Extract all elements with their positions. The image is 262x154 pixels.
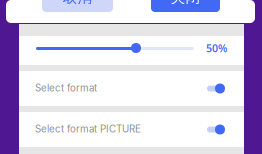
staticText: Select format PICTURE <box>35 123 141 135</box>
staticText: Select format <box>35 82 97 94</box>
button[interactable]: 关闭 <box>151 0 220 12</box>
button[interactable]: 取消 <box>42 0 113 12</box>
staticText: 取消 <box>62 0 92 6</box>
staticText: 50% <box>206 41 227 55</box>
staticText: 关闭 <box>170 0 200 6</box>
button[interactable]: Select format <box>19 71 244 106</box>
button[interactable]: Select format PICTURE <box>19 112 244 147</box>
